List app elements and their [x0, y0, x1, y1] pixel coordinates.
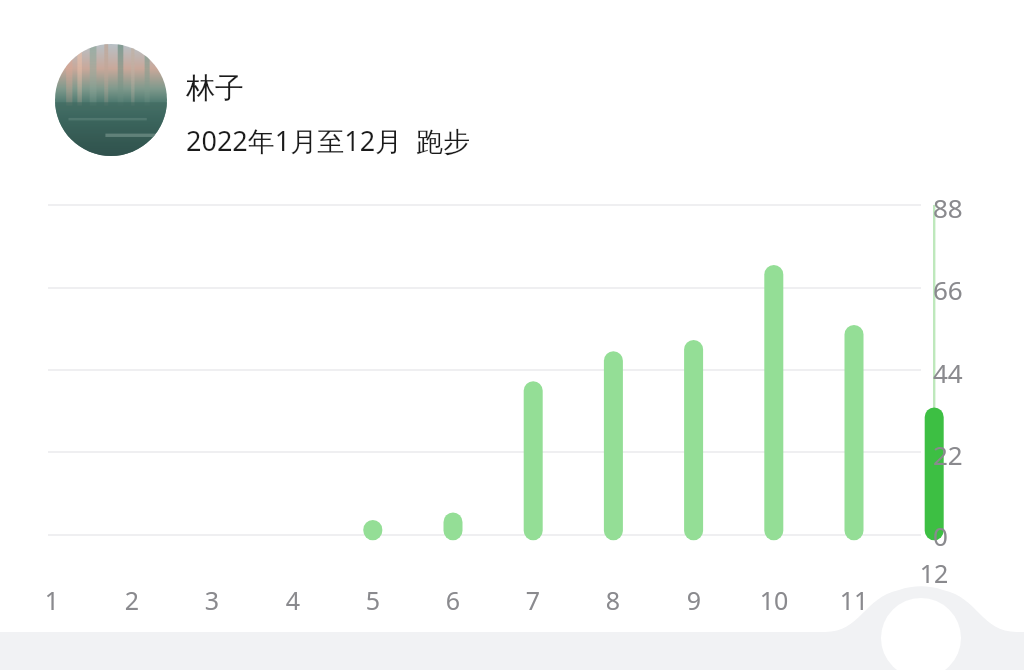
- button[interactable]: 6: [433, 583, 473, 617]
- staticText: 0: [933, 518, 948, 553]
- button[interactable]: 7: [513, 583, 553, 617]
- button[interactable]: 8: [593, 583, 633, 617]
- button[interactable]: 9: [674, 583, 714, 617]
- button[interactable]: 5: [353, 583, 393, 617]
- staticText: 88: [933, 190, 963, 225]
- staticText: 44: [933, 355, 963, 390]
- button[interactable]: 3: [192, 583, 232, 617]
- button[interactable]: 4: [273, 583, 313, 617]
- staticText: 66: [933, 272, 963, 307]
- button[interactable]: 10: [754, 583, 794, 617]
- button[interactable]: Home: [881, 598, 961, 670]
- button[interactable]: Profile photo: [55, 44, 167, 156]
- staticText: 2022年1月至12月 跑步: [186, 122, 471, 159]
- button[interactable]: 2: [112, 583, 152, 617]
- staticText: 林子: [186, 70, 244, 107]
- button[interactable]: 11: [834, 583, 874, 617]
- button[interactable]: 12: [914, 556, 954, 590]
- staticText: 22: [933, 437, 963, 472]
- button[interactable]: 1: [32, 583, 72, 617]
